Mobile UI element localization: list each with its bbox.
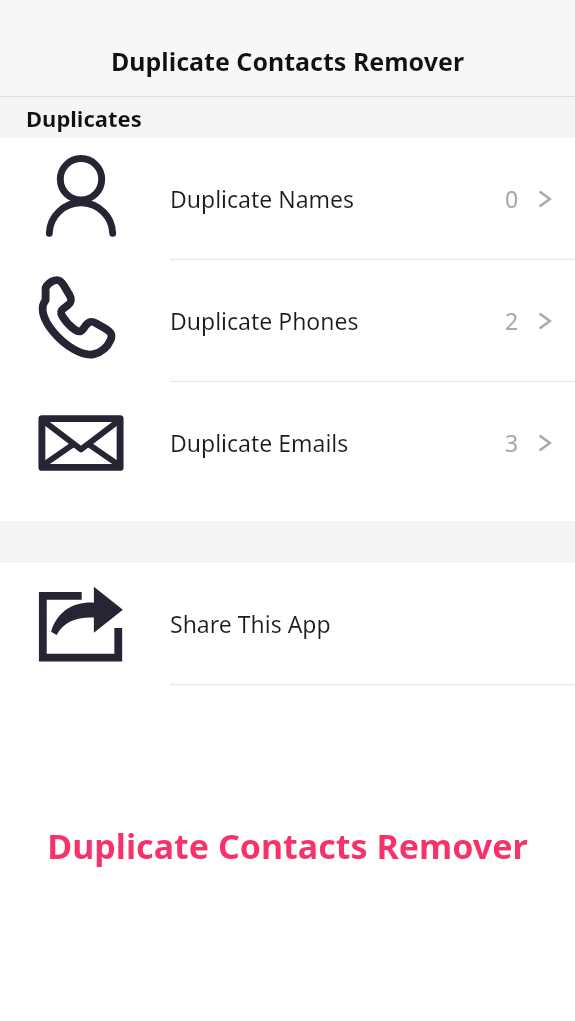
staticText: Duplicates [26, 103, 142, 133]
other: Open Duplicate Names [535, 189, 555, 209]
staticText: Duplicate Emails [170, 427, 505, 458]
button[interactable]: Share This App [0, 563, 575, 684]
staticText: Duplicate Contacts Remover [0, 823, 575, 869]
staticText: Duplicate Phones [170, 305, 505, 336]
button[interactable]: Duplicate Names [0, 138, 575, 259]
button[interactable]: Duplicate Emails [0, 382, 575, 503]
staticText: Duplicate Contacts Remover [0, 44, 575, 78]
other: Open Duplicate Phones [535, 311, 555, 331]
staticText: Share This App [170, 608, 555, 639]
staticText: 0 [505, 183, 519, 214]
staticText: Duplicate Names [170, 183, 505, 214]
staticText: 3 [505, 427, 519, 458]
other: Open Duplicate Emails [535, 433, 555, 453]
staticText: 2 [505, 305, 519, 336]
button[interactable]: Duplicate Phones [0, 260, 575, 381]
staticText: Duplicate Contacts Remover [1, 825, 575, 871]
